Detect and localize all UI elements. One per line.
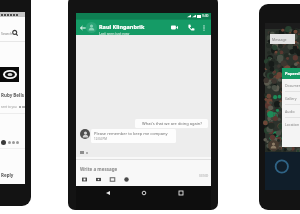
button[interactable]: Contact photo [86,22,97,33]
button[interactable]: Emoji [123,176,130,183]
staticText: Reply [1,172,14,178]
button[interactable]: Like [1,140,6,145]
button[interactable]: Document [282,79,300,92]
button[interactable]: Search [0,26,25,40]
button[interactable]: Home [138,187,149,198]
button[interactable]: Back [102,187,113,198]
staticText: Last seen just now [99,31,130,36]
button[interactable]: Audio [282,105,300,118]
button[interactable]: Back [78,23,87,32]
button[interactable]: Gallery [282,92,300,105]
staticText: 12:04 PM [94,137,107,141]
staticText: Audio [285,109,295,114]
staticText: Document [285,83,300,88]
staticText: Gallery [285,96,297,101]
button[interactable]: Call [186,22,197,33]
button[interactable]: Message [270,34,295,44]
staticText: 9:30 [202,14,209,18]
button[interactable]: Recents [175,187,186,198]
staticText: Search [1,31,13,36]
staticText: Paperclip [285,71,300,76]
button[interactable]: Gallery [95,176,102,183]
button[interactable]: SEND [197,171,211,180]
staticText: SEND [199,173,209,178]
staticText: sent to you [1,105,17,109]
staticText: Write a message [80,166,118,172]
button[interactable]: More options [200,24,208,32]
staticText: Please remember to keep me company [94,131,168,136]
staticText: Ruby Bells [1,92,24,98]
button[interactable]: Video call [169,22,180,33]
button[interactable]: Camera [81,176,88,183]
button[interactable]: What's that we are doing again? [135,119,208,128]
button[interactable]: Location [282,118,300,131]
button[interactable]: Please remember to keep me company [91,129,176,143]
staticText: Raul Klinganbrik [99,23,145,30]
staticText: Location [285,122,300,127]
staticText: What's that we are doing again? [142,121,202,126]
button[interactable]: Attach [109,176,116,183]
staticText: Message [272,37,287,42]
